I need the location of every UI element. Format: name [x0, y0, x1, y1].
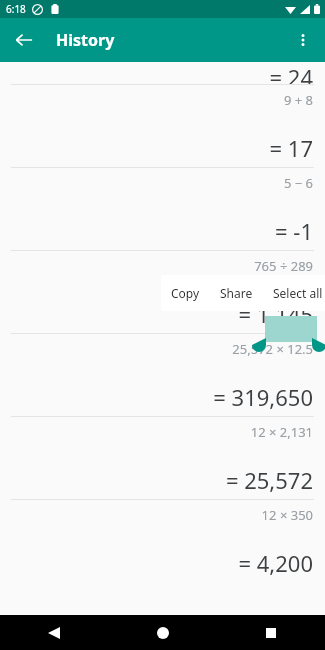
button[interactable]: Select all [263, 275, 325, 311]
staticText: Copy [171, 285, 200, 301]
staticText: 6:18 [6, 2, 26, 16]
button[interactable]: Home [145, 615, 181, 650]
staticText: Select all [273, 285, 323, 301]
staticText: = -1 [0, 216, 313, 246]
button[interactable]: Back [6, 22, 42, 58]
button[interactable]: 25,572 × 12.5 [0, 334, 325, 416]
button[interactable]: Recents [253, 615, 289, 650]
staticText: 5 − 6 [0, 174, 313, 192]
staticText: History [56, 29, 115, 51]
button[interactable]: 9 + 8 [0, 85, 325, 167]
staticText: = 17 [0, 133, 313, 163]
staticText: 765 ÷ 289 [0, 257, 313, 275]
staticText: 9 + 8 [0, 91, 313, 109]
button[interactable]: More options [285, 22, 321, 58]
staticText: = 4,200 [0, 548, 313, 578]
staticText: = 319,650 [0, 382, 313, 412]
button[interactable]: 765 ÷ 289 [0, 251, 325, 333]
staticText: 12 × 2,131 [0, 423, 313, 441]
staticText: Share [220, 285, 253, 301]
staticText: = 1,145 [0, 299, 313, 329]
button[interactable]: 12 × 350 [0, 500, 325, 582]
button[interactable]: Copy [161, 275, 210, 311]
staticText: 12 × 350 [0, 506, 313, 524]
staticText: 25,572 × 12.5 [0, 340, 313, 358]
button[interactable]: 12 × 2,131 [0, 417, 325, 499]
staticText: = 24 [269, 62, 313, 84]
staticText: = 25,572 [0, 465, 313, 495]
button[interactable]: 5 − 6 [0, 168, 325, 250]
button[interactable]: Back [36, 615, 72, 650]
button[interactable]: Share [210, 275, 263, 311]
button[interactable]: = 24 [0, 62, 325, 84]
